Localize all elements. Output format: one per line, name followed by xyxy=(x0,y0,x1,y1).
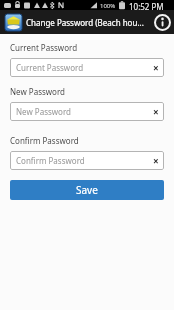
button[interactable]: × xyxy=(148,58,164,77)
button[interactable]: Confirm Password xyxy=(10,151,164,170)
staticText: × xyxy=(153,154,159,168)
staticText: Change Password (Beach hou... xyxy=(26,17,150,28)
staticText: Confirm Password xyxy=(10,135,79,146)
staticText: × xyxy=(153,105,159,119)
button[interactable]: Current Password xyxy=(10,58,164,77)
staticText: New Password xyxy=(16,106,148,117)
button[interactable]: × xyxy=(148,102,164,121)
staticText: New Password xyxy=(10,86,65,97)
staticText: 100% xyxy=(100,2,116,10)
button[interactable]: × xyxy=(148,151,164,170)
button[interactable] xyxy=(150,10,174,34)
staticText: Current Password xyxy=(16,62,148,73)
button[interactable]: New Password xyxy=(10,102,164,121)
staticText: Confirm Password xyxy=(16,155,148,166)
button[interactable]: Save xyxy=(10,180,164,200)
staticText: × xyxy=(153,61,159,75)
staticText: Save xyxy=(76,183,98,197)
staticText: 10:52 PM xyxy=(129,1,164,10)
staticText: Current Password xyxy=(10,42,78,53)
